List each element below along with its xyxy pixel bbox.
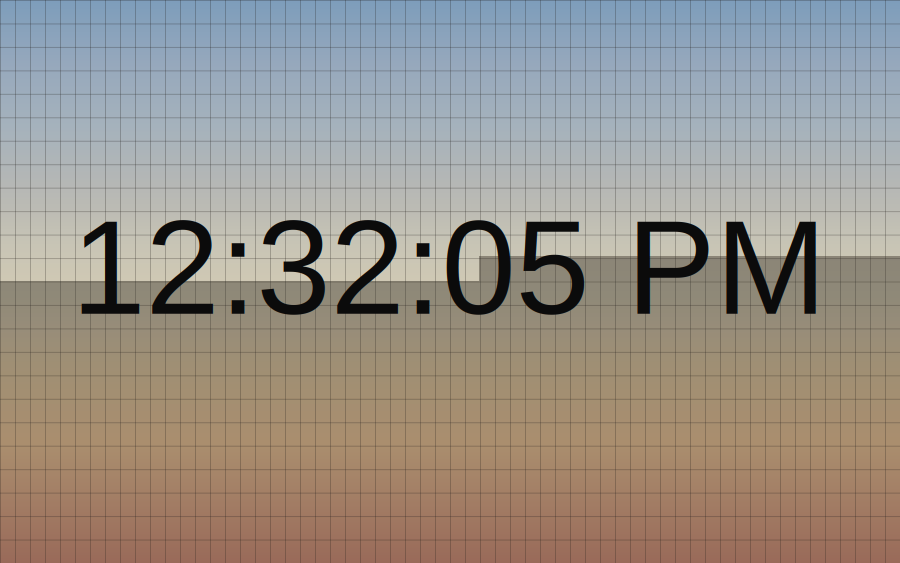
staticText: 12:32:05 PM <box>71 193 826 342</box>
